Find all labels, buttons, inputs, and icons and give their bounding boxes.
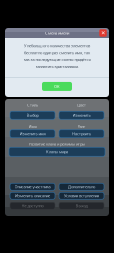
staticText: Дополнительно: [68, 184, 95, 189]
staticText: Описание участника: [14, 184, 50, 189]
staticText: бесплатно один раз сменить имя, так: [24, 50, 90, 55]
staticText: заплатить кристаллами.: [35, 64, 78, 69]
staticText: Имя: [28, 124, 36, 129]
button[interactable]: Изменить имя: [10, 130, 55, 138]
button[interactable]: Изменить: [59, 111, 104, 119]
button[interactable]: Описание участника: [10, 183, 55, 190]
staticText: Ранг: [77, 124, 85, 129]
staticText: Условия вступления: [64, 193, 99, 198]
button[interactable]: Условия вступления: [59, 192, 104, 199]
staticText: Изменить имя: [19, 131, 45, 136]
button[interactable]: Выход: [59, 202, 104, 209]
staticText: Не доступно: [21, 203, 43, 208]
staticText: Выбор: [26, 113, 38, 118]
staticText: Выход: [75, 203, 87, 208]
staticText: У небольшого количества элементов: [24, 43, 90, 48]
staticText: Изменить: [72, 113, 90, 118]
staticText: как за последующие смены придётся: [23, 57, 90, 62]
staticText: Развитие клана и режимы игры: [29, 141, 85, 147]
staticText: Стиль: [27, 102, 38, 108]
staticText: Цвет: [77, 102, 86, 108]
button[interactable]: ОК: [42, 82, 72, 91]
staticText: Смена имени: [45, 30, 69, 36]
button[interactable]: Кланы мира: [9, 147, 105, 156]
button[interactable]: Выбор: [10, 111, 55, 119]
staticText: ✕: [101, 30, 105, 36]
button[interactable]: Изменить описание: [10, 192, 55, 199]
button[interactable]: Закрыть: [98, 28, 107, 37]
button[interactable]: Настроить: [59, 130, 104, 138]
staticText: Кланы мира: [46, 149, 68, 154]
button[interactable]: Не доступно: [10, 202, 55, 209]
button[interactable]: Дополнительно: [59, 183, 104, 190]
staticText: Настроить: [72, 131, 91, 136]
staticText: ОК: [54, 84, 60, 89]
staticText: Изменить описание: [15, 193, 50, 198]
